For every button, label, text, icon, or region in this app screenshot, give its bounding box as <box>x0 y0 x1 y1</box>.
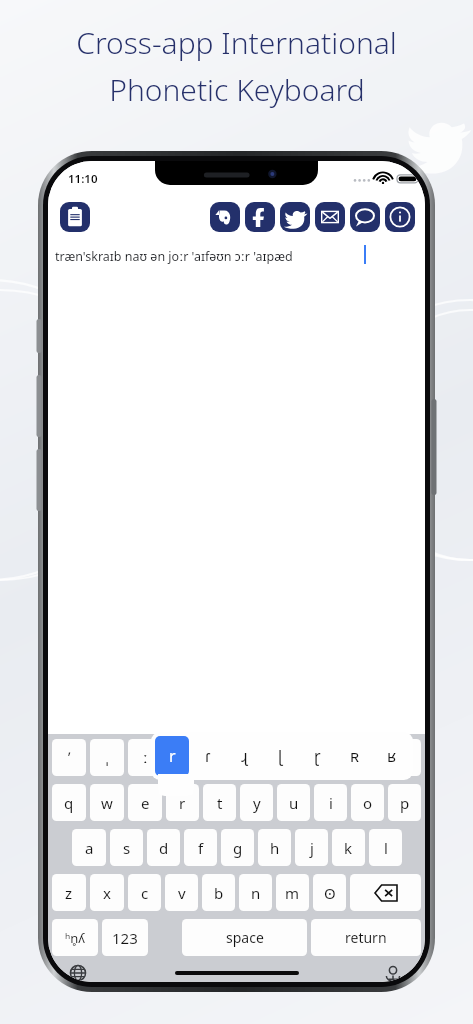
staticText: f <box>198 838 204 858</box>
button[interactable]: ɽ <box>314 739 347 776</box>
button[interactable]: Clipboard <box>60 202 90 232</box>
staticText: i <box>329 793 333 813</box>
button[interactable]: Evernote <box>210 202 240 232</box>
button[interactable]: v <box>165 874 198 911</box>
button[interactable]: Messages <box>350 202 380 232</box>
staticText: ʼ <box>68 748 71 767</box>
button[interactable]: ʀ <box>351 739 384 776</box>
button[interactable]: Backspace <box>350 874 421 911</box>
button[interactable]: IPA symbols <box>52 919 98 956</box>
button[interactable]: p <box>388 784 421 821</box>
button[interactable]: f <box>184 829 217 866</box>
staticText: ʁ <box>387 745 396 767</box>
staticText: p <box>400 793 410 813</box>
button[interactable]: Email <box>315 202 345 232</box>
button[interactable]: ʼ <box>52 739 86 776</box>
staticText: ɽ <box>314 745 321 767</box>
staticText: o <box>363 793 373 813</box>
button[interactable]: ɻ <box>227 736 261 776</box>
button[interactable]: ː <box>128 739 162 776</box>
button[interactable]: ʀ <box>337 736 372 776</box>
button[interactable]: ɾ <box>203 739 236 776</box>
button[interactable]: d <box>147 829 180 866</box>
staticText: træn'skraɪb naʊ ən joːr 'aɪfəʊn ɔːr 'aɪp… <box>55 248 293 265</box>
staticText: ʀ <box>350 745 359 767</box>
button[interactable]: ɾ <box>191 736 225 776</box>
button[interactable]: e <box>128 784 162 821</box>
button[interactable]: s <box>110 829 143 866</box>
button[interactable]: j <box>295 829 328 866</box>
button[interactable]: ʁ <box>388 739 421 776</box>
staticText: s <box>123 838 131 858</box>
staticText: z <box>65 883 73 903</box>
button[interactable]: Facebook <box>245 202 275 232</box>
button[interactable]: space <box>182 919 307 956</box>
staticText: v <box>178 883 186 903</box>
button[interactable]: a <box>72 829 106 866</box>
button[interactable]: r <box>166 739 199 776</box>
button[interactable]: m <box>276 874 309 911</box>
button[interactable]: ɭ <box>277 739 310 776</box>
staticText: x <box>103 883 111 903</box>
button[interactable]: u <box>277 784 310 821</box>
staticText: r <box>169 745 176 767</box>
button[interactable]: ɭ <box>263 736 298 776</box>
button[interactable]: ɻ <box>240 739 273 776</box>
button[interactable]: l <box>369 829 402 866</box>
staticText: return <box>345 928 387 947</box>
staticText: a <box>85 838 94 858</box>
button[interactable]: g <box>221 829 254 866</box>
button[interactable]: Info <box>385 202 415 232</box>
button[interactable]: w <box>90 784 124 821</box>
button[interactable]: ˌ <box>90 739 124 776</box>
button[interactable]: x <box>90 874 124 911</box>
staticText: 11:10 <box>68 171 98 187</box>
staticText: space <box>226 928 264 947</box>
staticText: d <box>159 838 169 858</box>
staticText: l <box>384 838 388 858</box>
button[interactable]: i <box>314 784 347 821</box>
staticText: 123 <box>112 928 138 948</box>
button[interactable]: o <box>351 784 384 821</box>
button[interactable]: Dictation <box>381 964 405 982</box>
button[interactable]: 123 <box>102 919 148 956</box>
staticText: n <box>251 883 261 903</box>
button[interactable]: h <box>258 829 291 866</box>
staticText: r <box>179 793 186 813</box>
button[interactable]: y <box>240 784 273 821</box>
staticText: ɻ <box>241 745 248 767</box>
button[interactable]: b <box>202 874 235 911</box>
button[interactable]: c <box>128 874 161 911</box>
button[interactable]: q <box>52 784 86 821</box>
staticText: c <box>141 883 149 903</box>
staticText: ː <box>143 748 148 767</box>
staticText: e <box>141 793 150 813</box>
staticText: Phonetic Keyboard <box>109 69 365 110</box>
staticText: j <box>310 838 314 858</box>
staticText: ʰn̥ʎ <box>65 929 85 947</box>
button[interactable]: ʘ <box>313 874 346 911</box>
button[interactable]: z <box>52 874 86 911</box>
button[interactable]: r <box>166 784 199 821</box>
button[interactable]: t <box>203 784 236 821</box>
staticText: Cross-app International <box>76 22 397 63</box>
button[interactable]: r <box>155 736 189 776</box>
button[interactable]: ɽ <box>300 736 335 776</box>
staticText: q <box>64 793 74 813</box>
button[interactable]: Switch keyboard <box>66 964 90 982</box>
button[interactable]: n <box>239 874 272 911</box>
button[interactable]: ʁ <box>374 736 409 776</box>
button[interactable]: return <box>311 919 421 956</box>
staticText: ˌ <box>106 748 109 767</box>
staticText: h <box>270 838 280 858</box>
staticText: w <box>101 793 113 813</box>
button[interactable]: Twitter <box>280 202 310 232</box>
staticText: m <box>285 883 300 903</box>
button[interactable]: k <box>332 829 365 866</box>
